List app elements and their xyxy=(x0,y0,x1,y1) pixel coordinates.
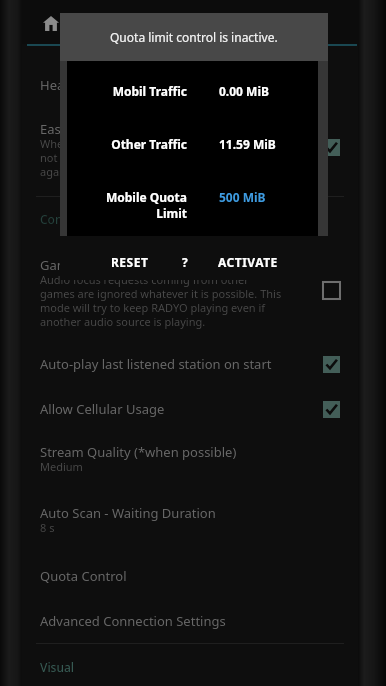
button[interactable]: Advanced Connection Settings xyxy=(22,599,358,643)
staticText: Mobile Quota Limit xyxy=(105,189,187,222)
button[interactable]: Checked xyxy=(320,398,342,420)
button[interactable]: Checked xyxy=(320,353,342,375)
staticText: Quota limit control is inactive. xyxy=(110,29,278,45)
staticText: When headphones are disconnected, do not… xyxy=(40,136,248,179)
button[interactable]: Checked xyxy=(320,136,342,158)
staticText: Connection xyxy=(40,211,106,227)
button[interactable]: Game Mode xyxy=(22,240,358,346)
button[interactable]: Headphone xyxy=(22,64,358,106)
staticText: Game Mode xyxy=(40,256,115,274)
staticText: Medium xyxy=(40,459,83,474)
button[interactable]: RESET xyxy=(103,244,157,280)
staticText: Auto-play last listened station on start xyxy=(40,355,272,373)
staticText: Allow Cellular Usage xyxy=(40,400,165,418)
staticText: 0.00 MiB xyxy=(219,83,269,99)
button[interactable]: Unchecked xyxy=(320,279,342,301)
button[interactable]: Quota Control xyxy=(22,554,358,598)
staticText: Quota Control xyxy=(40,567,127,585)
staticText: Headphone xyxy=(40,76,112,94)
staticText: 8 s xyxy=(40,520,55,535)
staticText: Mobil Traffic xyxy=(112,83,187,99)
staticText: Auto Scan - Waiting Duration xyxy=(40,504,216,522)
button[interactable]: Auto-play last listened station on start xyxy=(22,342,358,386)
staticText: 11.59 MiB xyxy=(219,136,276,152)
button[interactable]: Stream Quality (*when possible) xyxy=(22,429,358,490)
staticText: ? xyxy=(182,254,189,270)
staticText: RESET xyxy=(111,254,149,270)
staticText: Audio focus requests coming from other g… xyxy=(40,272,282,329)
staticText: Other Traffic xyxy=(111,136,187,152)
staticText: Visual xyxy=(40,659,75,675)
button[interactable]: Home xyxy=(35,7,66,38)
button[interactable]: Easy Pause xyxy=(22,106,358,194)
staticText: ACTIVATE xyxy=(218,254,278,270)
staticText: Advanced Connection Settings xyxy=(40,612,226,630)
button[interactable]: Auto Scan - Waiting Duration xyxy=(22,490,358,551)
staticText: Easy Pause xyxy=(40,120,108,138)
button[interactable]: Allow Cellular Usage xyxy=(22,387,358,431)
button[interactable]: ? xyxy=(174,244,197,280)
staticText: Stream Quality (*when possible) xyxy=(40,443,237,461)
button[interactable]: ACTIVATE xyxy=(210,244,286,280)
staticText: 500 MiB xyxy=(219,189,266,205)
